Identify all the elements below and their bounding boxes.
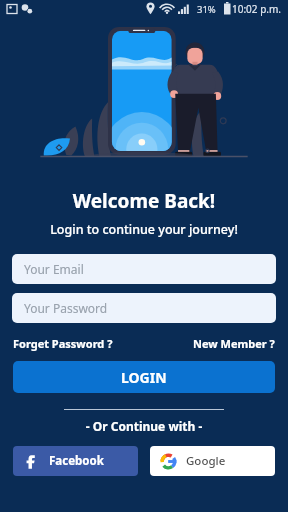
button[interactable]: Facebook	[13, 446, 138, 476]
staticText: 31%	[197, 3, 216, 16]
button[interactable]: Your Email	[12, 254, 276, 284]
staticText: Login to continue your journey!	[0, 221, 288, 238]
staticText: Your Password	[24, 300, 108, 316]
button[interactable]: Your Password	[12, 293, 276, 323]
staticText: Your Email	[24, 261, 84, 277]
button[interactable]: New Member ?	[191, 334, 277, 353]
staticText: 10:02 p.m.	[232, 2, 282, 16]
staticText: - Or Continue with -	[0, 418, 288, 434]
staticText: Welcome Back!	[0, 188, 288, 214]
button[interactable]: Forget Password ?	[11, 334, 115, 353]
staticText: Facebook	[49, 453, 104, 469]
staticText: Google	[186, 453, 226, 469]
button[interactable]: LOGIN	[13, 361, 275, 393]
button[interactable]: Google	[150, 446, 275, 476]
staticText: LOGIN	[121, 368, 167, 387]
